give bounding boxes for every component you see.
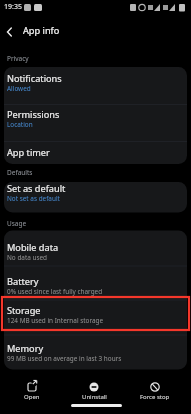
staticText: Notifications	[7, 72, 62, 85]
staticText: Battery	[7, 275, 39, 288]
staticText: Memory	[7, 342, 44, 355]
staticText: 124 MB used in Internal storage	[7, 316, 104, 325]
staticText: 0% used since last fully charged	[7, 287, 103, 296]
button[interactable]: App timer	[0, 142, 191, 164]
staticText: Defaults	[7, 168, 33, 177]
button[interactable]: Notifications	[0, 68, 191, 96]
staticText: Location	[7, 120, 33, 129]
staticText: No data used	[7, 253, 47, 262]
button[interactable]: Battery	[0, 271, 191, 301]
staticText: 99 MB used on average in last 3 hours	[7, 354, 122, 363]
staticText: 19:35	[4, 2, 22, 12]
staticText: Privacy	[7, 54, 29, 63]
button[interactable]: Set as default	[0, 178, 191, 208]
staticText: Set as default	[7, 182, 66, 195]
staticText: App info	[23, 24, 60, 37]
button[interactable]: Permissions	[0, 104, 191, 132]
staticText: Mobile data	[7, 241, 59, 254]
button[interactable]: Uninstall	[70, 381, 118, 405]
button[interactable]	[0, 22, 19, 42]
staticText: Allowed	[7, 84, 31, 93]
staticText: Permissions	[7, 108, 60, 121]
button[interactable]: Force stop	[131, 381, 179, 405]
staticText: Force stop	[140, 393, 170, 401]
staticText: Uninstall	[82, 393, 107, 401]
button[interactable]: Memory	[0, 338, 191, 368]
button[interactable]: Mobile data	[0, 237, 191, 267]
staticText: App timer	[7, 146, 50, 159]
staticText: Not set as default	[7, 194, 60, 203]
staticText: Usage	[7, 219, 27, 228]
staticText: Storage	[7, 304, 41, 317]
staticText: Open	[24, 393, 40, 401]
button[interactable]: Open	[8, 381, 56, 405]
button[interactable]: Storage	[0, 300, 191, 332]
